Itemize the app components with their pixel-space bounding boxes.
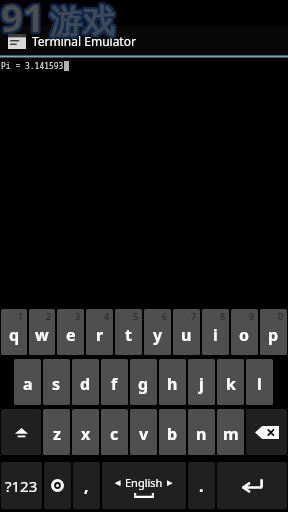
button[interactable]: r [86,309,113,355]
staticText: a [23,373,33,395]
staticText: 游戏 [47,1,113,43]
staticText: 3 [75,310,81,322]
button[interactable]: Symbols [1,462,42,509]
button[interactable]: m [217,409,244,455]
staticText: j [199,373,204,395]
staticText: 游戏 [47,3,113,45]
staticText: c [110,423,119,445]
button[interactable]: d [72,359,99,405]
staticText: 游戏 [49,1,115,43]
staticText: ▶ [167,479,173,487]
staticText: i [213,324,218,346]
staticText: n [196,423,207,445]
staticText: 游戏 [47,0,113,41]
staticText: l [257,373,262,395]
staticText: p [268,324,279,346]
staticText: x [81,423,91,445]
staticText: 91 [1,0,45,45]
staticText: q [9,324,20,346]
staticText: 91 [1,0,45,43]
button[interactable]: q [1,309,27,355]
staticText: 游戏 [51,0,117,41]
staticText: 4 [104,310,110,322]
staticText: English [125,475,163,490]
button[interactable]: p [260,309,287,355]
button[interactable]: i [202,309,229,355]
staticText: 91 [3,0,47,45]
staticText: 7 [191,310,197,322]
staticText: z [53,423,61,445]
button[interactable]: Space [102,462,186,509]
button[interactable]: g [130,359,157,405]
staticText: g [138,373,149,395]
staticText: 5 [133,310,139,322]
staticText: Terminal Emulator [32,33,136,49]
staticText: w [35,324,49,346]
staticText: d [80,373,91,395]
staticText: 9 [249,310,255,322]
staticText: t [125,324,132,346]
button[interactable]: u [173,309,200,355]
button[interactable]: Backspace [246,409,287,455]
button[interactable]: f [101,359,128,405]
button[interactable]: Comma [73,462,100,509]
staticText: 游戏 [49,1,115,43]
staticText: f [111,373,118,395]
button[interactable]: Settings [44,462,71,509]
staticText: 91 [3,0,47,41]
staticText: b [167,423,178,445]
staticText: 91 [1,0,45,41]
staticText: 91 [1,0,45,43]
button[interactable]: v [130,409,157,455]
button[interactable]: t [115,309,142,355]
staticText: m [223,423,239,445]
staticText: y [153,324,163,346]
staticText: ?123 [5,476,38,496]
button[interactable]: k [217,359,244,405]
staticText: u [181,324,192,346]
staticText: 91 [0,0,43,41]
button[interactable]: c [101,409,128,455]
staticText: s [52,373,61,395]
staticText: 8 [220,310,226,322]
button[interactable]: w [29,309,55,355]
button[interactable]: a [14,359,41,405]
button[interactable]: Period [188,462,215,509]
staticText: r [96,324,104,346]
staticText: e [66,324,76,346]
staticText: 游戏 [49,0,115,41]
staticText: Pi = 3.141593 [1,60,64,71]
button[interactable]: Terminal Emulator [0,26,288,55]
staticText: 1 [18,310,24,322]
staticText: 2 [46,310,52,322]
staticText: . [199,475,204,497]
staticText: ◀ [115,479,121,487]
staticText: 91 [3,0,47,43]
button[interactable]: s [43,359,70,405]
button[interactable]: z [43,409,70,455]
button[interactable]: Enter [217,462,287,509]
button[interactable]: b [159,409,186,455]
button[interactable]: e [57,309,84,355]
button[interactable]: x [72,409,99,455]
staticText: 游戏 [51,1,117,43]
button[interactable]: n [188,409,215,455]
staticText: , [84,475,89,497]
staticText: h [167,373,178,395]
staticText: o [239,324,250,346]
button[interactable]: l [246,359,273,405]
button[interactable]: o [231,309,258,355]
staticText: 游戏 [49,3,115,45]
staticText: 游戏 [51,3,117,45]
staticText: 6 [162,310,168,322]
button[interactable]: j [188,359,215,405]
button[interactable]: y [144,309,171,355]
button[interactable]: Shift [1,409,41,455]
staticText: 91 [0,0,43,43]
staticText: k [226,373,236,395]
staticText: 0 [278,310,284,322]
button[interactable]: h [159,359,186,405]
staticText: v [139,423,149,445]
staticText: 91 [0,0,43,45]
